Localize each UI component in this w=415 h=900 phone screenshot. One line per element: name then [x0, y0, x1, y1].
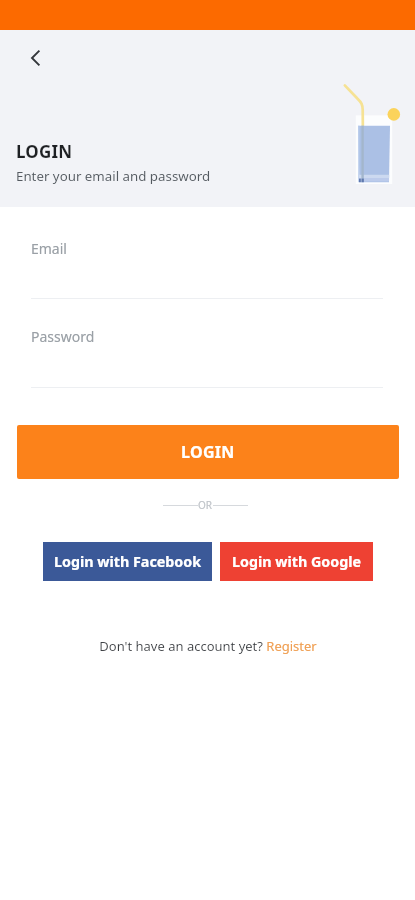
staticText: Login with Facebook [54, 552, 202, 571]
staticText: Password [31, 327, 95, 346]
button[interactable]: Back [14, 36, 58, 80]
staticText: LOGIN [181, 441, 235, 463]
button[interactable]: Don't have an account yet? Register [99, 637, 317, 655]
staticText: Login with Google [232, 552, 362, 571]
button[interactable]: LOGIN [17, 425, 399, 479]
staticText: OR [198, 498, 213, 512]
staticText: Enter your email and password [16, 167, 211, 185]
button[interactable]: Login with Facebook [43, 542, 212, 581]
button[interactable]: Email [31, 236, 383, 299]
button[interactable]: Password [31, 324, 383, 388]
button[interactable]: Login with Google [220, 542, 373, 581]
staticText: LOGIN [16, 140, 73, 163]
staticText: Email [31, 239, 67, 258]
